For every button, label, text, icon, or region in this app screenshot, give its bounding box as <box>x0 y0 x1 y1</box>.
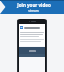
button[interactable]: Join your video <box>0 0 64 14</box>
staticText: Join your video <box>17 2 51 8</box>
button[interactable] <box>19 47 45 54</box>
staticText: stream <box>28 9 39 13</box>
other: App logo <box>20 26 23 29</box>
